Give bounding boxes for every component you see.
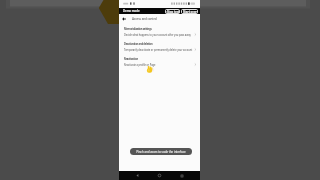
button[interactable]: Back <box>120 15 127 22</box>
staticText: Stop test <box>167 10 180 14</box>
staticText: Start over <box>183 10 197 14</box>
button[interactable]: Start over <box>181 9 198 14</box>
staticText: Demo mode <box>123 9 140 13</box>
staticText: Memorialization settings <box>124 27 152 31</box>
button[interactable]: Reactivation <box>119 56 200 71</box>
staticText: Decide what happens to your account afte… <box>124 33 191 36</box>
button[interactable]: Home <box>156 172 163 179</box>
staticText: Access and control <box>132 17 157 21</box>
staticText: Temporarily deactivate or permanently de… <box>124 48 193 51</box>
staticText: Pinch and zoom to scale the interface <box>136 150 186 154</box>
button[interactable]: Stop test <box>165 9 180 14</box>
staticText: Reactivate a profile or Page <box>124 63 156 66</box>
button[interactable]: Memorialization settings <box>119 26 200 41</box>
button[interactable]: Recents <box>178 172 185 179</box>
staticText: Deactivation and deletion <box>124 42 153 46</box>
staticText: Reactivation <box>124 57 138 61</box>
button[interactable]: Deactivation and deletion <box>119 41 200 56</box>
button[interactable]: Back <box>134 172 141 179</box>
